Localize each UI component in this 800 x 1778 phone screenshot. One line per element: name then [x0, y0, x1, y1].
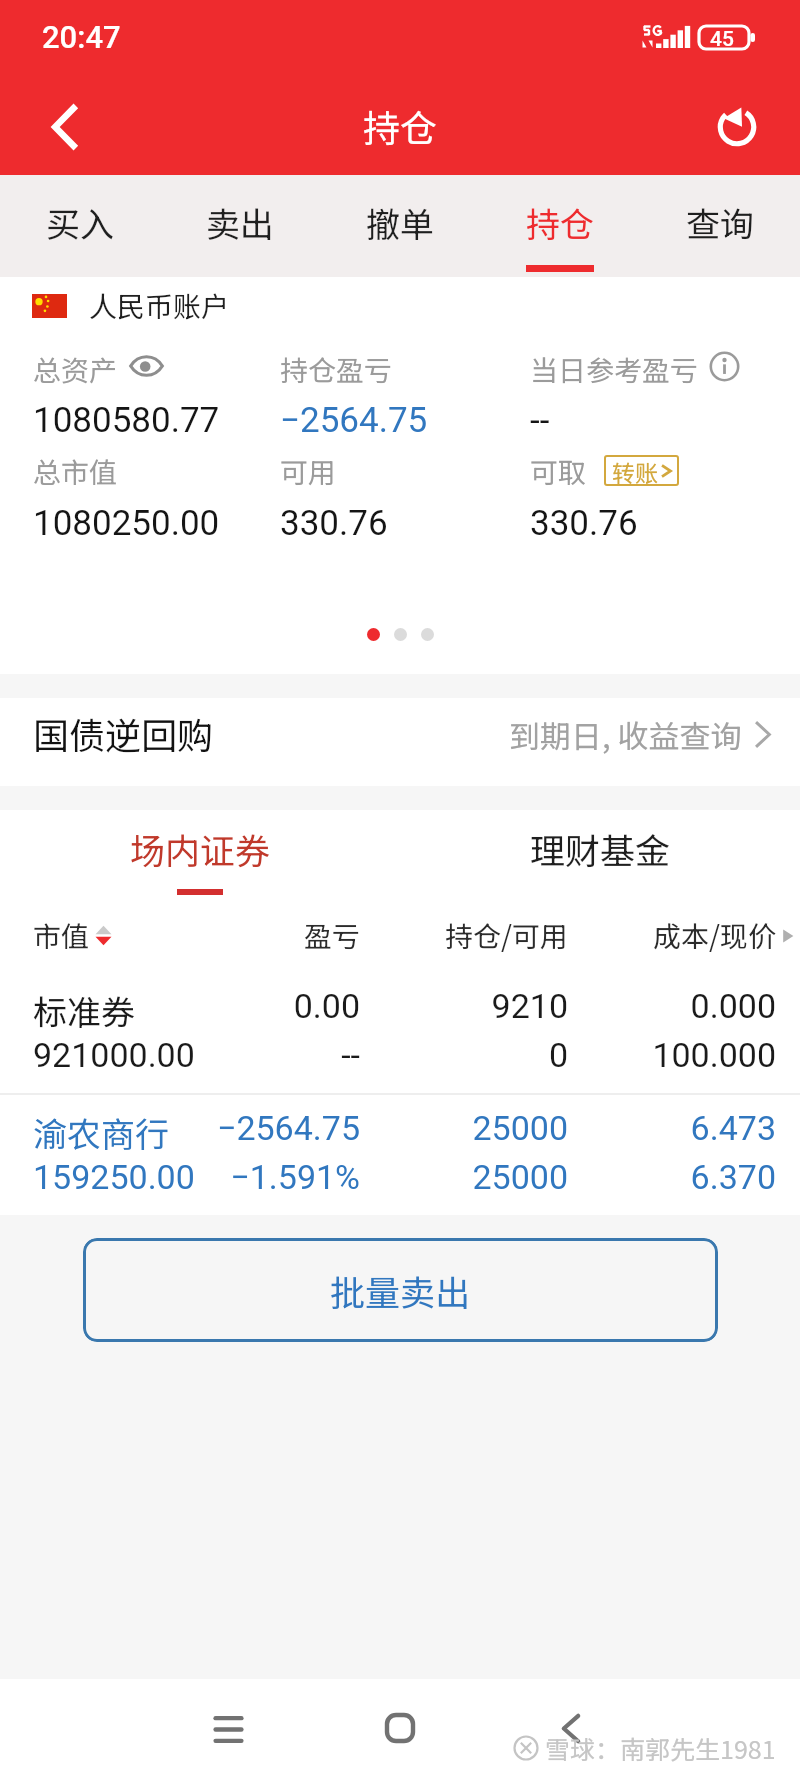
- staticText: 雪球：南郭先生1981: [545, 1730, 776, 1766]
- button[interactable]: 批量卖出: [83, 1238, 718, 1342]
- staticText: --: [530, 400, 550, 441]
- staticText: −2564.75: [280, 400, 428, 441]
- button[interactable]: 标准券: [0, 962, 800, 1093]
- staticText: 转账: [612, 455, 658, 486]
- button[interactable]: Back: [29, 91, 101, 163]
- staticText: 0.00: [193, 986, 360, 1026]
- button[interactable]: Recent apps: [192, 1693, 264, 1765]
- staticText: 1080250.00: [33, 503, 220, 544]
- staticText: --: [193, 1035, 360, 1075]
- button[interactable]: 转账: [604, 455, 679, 486]
- staticText: 到期日, 收益查询: [509, 712, 742, 757]
- staticText: 100.000: [568, 1035, 776, 1075]
- staticText: 可用: [280, 451, 337, 485]
- button[interactable]: Home: [364, 1692, 436, 1764]
- staticText: 持仓盈亏: [280, 349, 393, 383]
- staticText: 0: [360, 1035, 568, 1075]
- staticText: 标准券: [33, 986, 193, 1035]
- staticText: 持仓/可用: [360, 915, 568, 956]
- button[interactable]: 国债逆回购: [0, 698, 800, 786]
- button[interactable]: Refresh: [702, 92, 772, 162]
- staticText: 卖出: [206, 198, 274, 247]
- button[interactable]: 卖出: [160, 175, 320, 277]
- button[interactable]: 查询: [640, 175, 800, 277]
- staticText: 国债逆回购: [33, 707, 214, 759]
- staticText: 盈亏: [193, 915, 360, 956]
- staticText: 20:47: [42, 19, 121, 55]
- button[interactable]: 持仓: [480, 175, 640, 277]
- staticText: 6.370: [568, 1157, 776, 1197]
- staticText: 159250.00: [33, 1157, 193, 1197]
- button[interactable]: 场内证券: [0, 810, 400, 895]
- button[interactable]: Back: [535, 1692, 607, 1764]
- button[interactable]: 买入: [0, 175, 160, 277]
- staticText: 当日参考盈亏: [530, 349, 699, 383]
- button[interactable]: 撤单: [320, 175, 480, 277]
- staticText: 330.76: [530, 503, 638, 544]
- staticText: 渝农商行: [33, 1108, 193, 1157]
- staticText: 市值: [33, 915, 90, 956]
- staticText: 查询: [686, 198, 754, 247]
- staticText: 人民币账户: [89, 285, 230, 319]
- button[interactable]: Info: [709, 351, 740, 382]
- staticText: 9210: [360, 986, 568, 1026]
- button[interactable]: Toggle balance visibility: [130, 355, 163, 377]
- staticText: 可取: [530, 451, 587, 485]
- staticText: 921000.00: [33, 1035, 193, 1075]
- button[interactable]: 渝农商行: [0, 1095, 800, 1215]
- staticText: 1080580.77: [33, 400, 220, 441]
- staticText: 持仓: [363, 99, 437, 153]
- staticText: 买入: [46, 198, 114, 247]
- staticText: 6.473: [568, 1108, 776, 1148]
- staticText: 理财基金: [530, 823, 671, 874]
- button[interactable]: 理财基金: [400, 810, 800, 895]
- staticText: 成本/现价: [653, 915, 776, 956]
- staticText: 45: [710, 27, 734, 52]
- staticText: 总市值: [33, 451, 118, 485]
- staticText: 25000: [360, 1108, 568, 1148]
- staticText: 批量卖出: [330, 1265, 471, 1316]
- staticText: 撤单: [366, 198, 434, 247]
- staticText: 场内证券: [130, 823, 271, 874]
- staticText: −2564.75: [193, 1108, 360, 1148]
- staticText: 持仓: [526, 198, 594, 247]
- staticText: 总资产: [33, 349, 118, 383]
- staticText: −1.591%: [193, 1157, 360, 1197]
- staticText: 330.76: [280, 503, 388, 544]
- staticText: 25000: [360, 1157, 568, 1197]
- staticText: 0.000: [568, 986, 776, 1026]
